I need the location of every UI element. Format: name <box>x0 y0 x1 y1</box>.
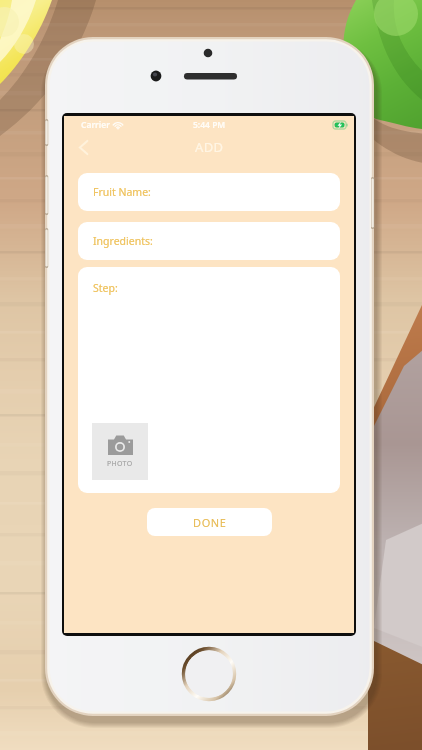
staticText: DONE <box>193 515 227 530</box>
staticText: Ingredients: <box>93 234 153 248</box>
staticText: Carrier <box>81 119 110 131</box>
button[interactable]: Fruit Name: <box>78 173 340 211</box>
staticText: 5:44 PM <box>193 119 226 131</box>
button[interactable]: Step: <box>78 267 340 493</box>
button[interactable]: Add photo <box>92 423 148 480</box>
staticText: Step: <box>93 281 118 295</box>
button[interactable]: DONE <box>147 508 272 536</box>
staticText: Fruit Name: <box>93 185 151 199</box>
staticText: ADD <box>195 138 224 156</box>
button[interactable]: Ingredients: <box>78 222 340 260</box>
staticText: PHOTO <box>107 459 133 469</box>
button[interactable]: Back <box>70 134 96 160</box>
